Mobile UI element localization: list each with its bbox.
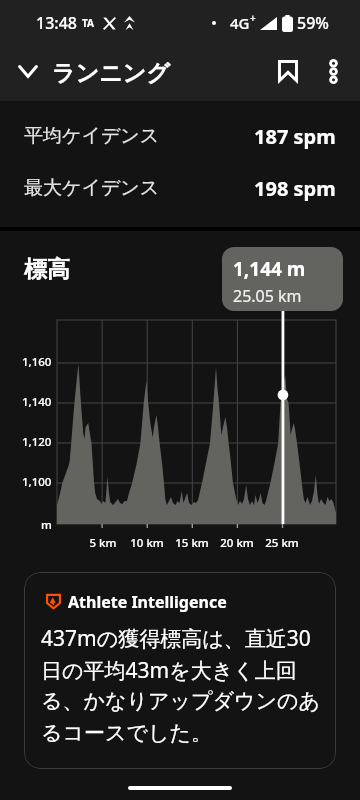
staticText: 1,160 bbox=[22, 354, 52, 370]
button[interactable]: 最大ケイデンス bbox=[0, 162, 360, 214]
staticText: TA bbox=[82, 16, 94, 30]
staticText: 10 km bbox=[125, 535, 169, 551]
staticText: 187 spm bbox=[254, 123, 336, 150]
staticText: 1,120 bbox=[22, 434, 52, 450]
staticText: 198 spm bbox=[254, 175, 336, 202]
staticText: 1,140 bbox=[22, 394, 52, 410]
staticText: 1,100 bbox=[22, 474, 52, 490]
staticText: 15 km bbox=[170, 535, 214, 551]
button[interactable]: Athlete Intelligence bbox=[24, 572, 336, 769]
staticText: 20 km bbox=[215, 535, 259, 551]
staticText: 59% bbox=[297, 12, 329, 34]
staticText: 5 km bbox=[81, 535, 125, 551]
staticText: 1,144 m bbox=[233, 256, 306, 282]
staticText: 平均ケイデンス bbox=[24, 124, 160, 148]
staticText: 日の平均43mを大きく上回 bbox=[41, 656, 297, 685]
button[interactable]: Collapse bbox=[8, 54, 48, 94]
staticText: 13:48 bbox=[36, 12, 77, 34]
staticText: 最大ケイデンス bbox=[24, 176, 160, 200]
staticText: るコースでした。 bbox=[41, 720, 212, 746]
staticText: 標高 bbox=[24, 255, 70, 284]
staticText: 25.05 km bbox=[233, 285, 302, 307]
staticText: + bbox=[250, 11, 256, 25]
staticText: 25 km bbox=[260, 535, 304, 551]
staticText: 4G bbox=[230, 13, 250, 33]
staticText: 437mの獲得標高は、直近30 bbox=[41, 624, 311, 653]
button[interactable]: More options bbox=[313, 51, 353, 91]
staticText: Athlete Intelligence bbox=[68, 591, 227, 613]
button[interactable]: 平均ケイデンス bbox=[0, 110, 360, 162]
button[interactable]: Bookmark bbox=[268, 51, 308, 91]
staticText: m bbox=[41, 517, 52, 533]
staticText: る、かなりアップダウンのあ bbox=[41, 688, 320, 714]
staticText: ランニング bbox=[52, 59, 170, 88]
